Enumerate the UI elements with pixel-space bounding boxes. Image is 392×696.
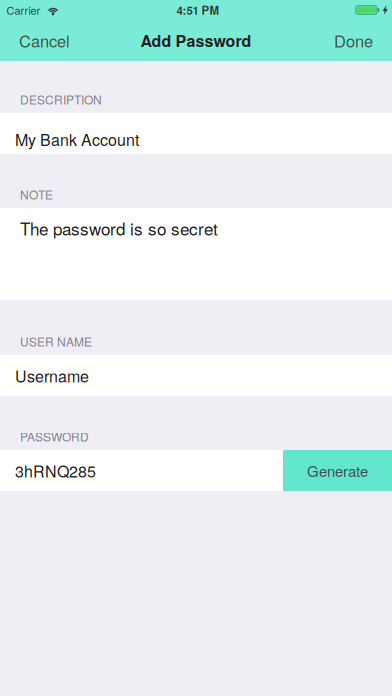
staticText: PASSWORD (20, 428, 89, 445)
staticText: Add Password (140, 29, 251, 52)
staticText: DESCRIPTION (20, 91, 102, 108)
staticText: 3hRNQ285 (15, 459, 96, 482)
staticText: The password is so secret (20, 216, 218, 240)
staticText: 4:51 PM (176, 2, 219, 18)
button[interactable]: Cancel (9, 20, 80, 61)
staticText: Username (15, 364, 89, 387)
staticText: Done (334, 29, 373, 52)
button[interactable]: Done (324, 20, 383, 61)
staticText: Generate (307, 460, 368, 481)
staticText: Carrier (6, 2, 40, 18)
staticText: USER NAME (20, 333, 92, 350)
staticText: Cancel (19, 29, 70, 52)
staticText: NOTE (20, 186, 53, 203)
button[interactable]: Generate (283, 450, 392, 491)
staticText: My Bank Account (15, 127, 139, 150)
